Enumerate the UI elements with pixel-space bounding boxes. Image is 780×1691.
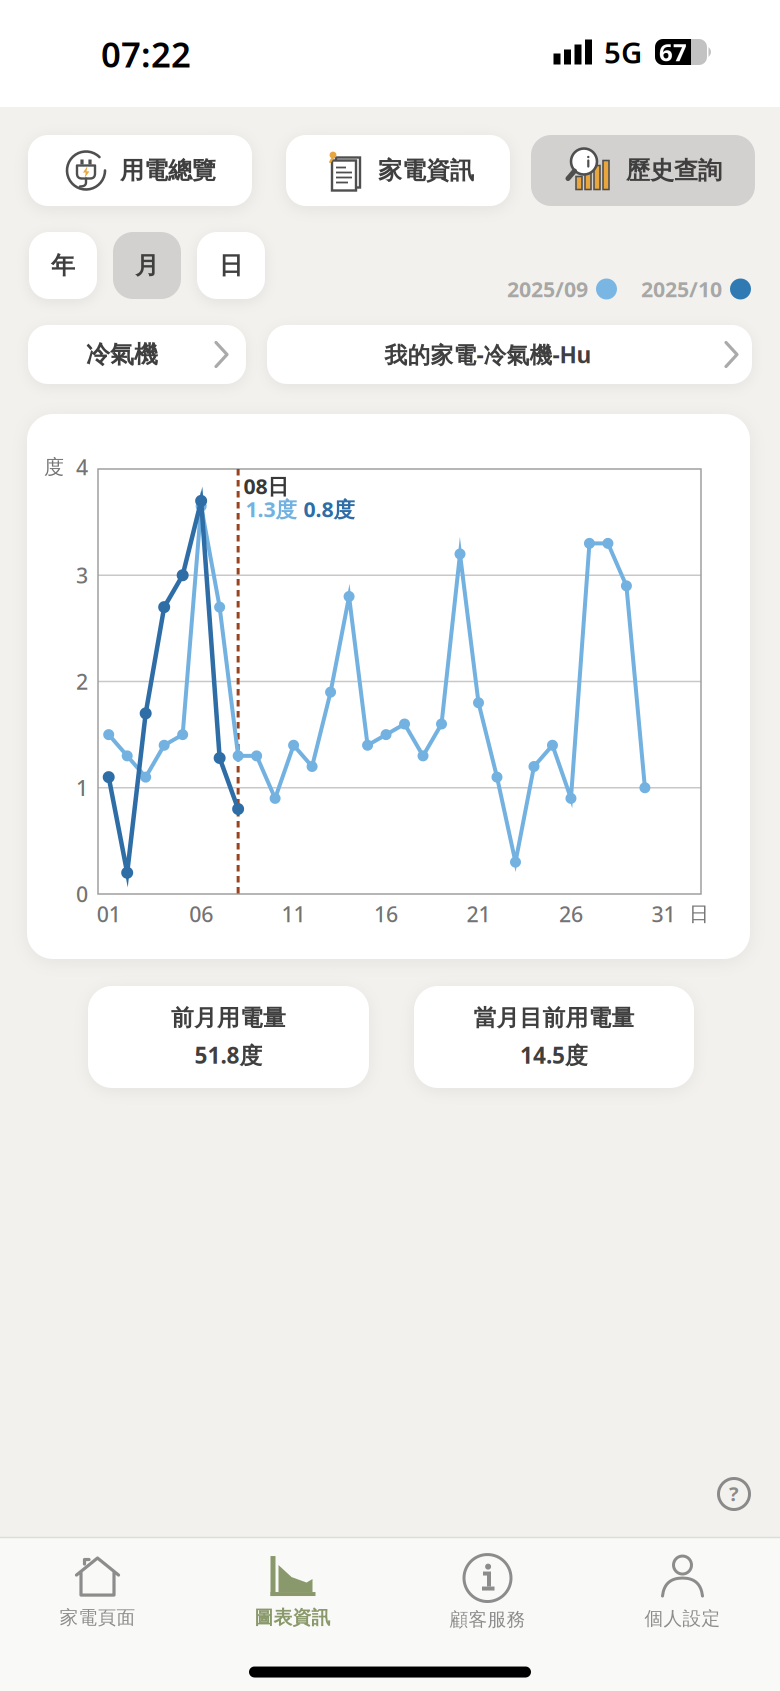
staticText: 1.3度	[245, 495, 296, 523]
staticText: 當月目前用電量	[473, 1004, 634, 1032]
button[interactable]: 我的家電-冷氣機-Hu	[267, 325, 752, 384]
staticText: 個人設定	[644, 1607, 720, 1630]
staticText: 日	[219, 251, 243, 280]
staticText: 16	[374, 900, 398, 928]
staticText: 08日	[243, 472, 288, 500]
staticText: 0	[76, 880, 88, 908]
staticText: 11	[282, 900, 306, 928]
button[interactable]: 年	[29, 232, 97, 299]
staticText: 度	[44, 455, 64, 479]
staticText: 14.5度	[520, 1040, 588, 1070]
staticText: 31	[651, 900, 675, 928]
staticText: 01	[97, 900, 121, 928]
button[interactable]: 顧客服務	[390, 1537, 585, 1647]
staticText: 26	[559, 900, 583, 928]
staticText: 3	[76, 561, 88, 589]
staticText: 0.8度	[303, 495, 354, 523]
button[interactable]: 當月目前用電量	[414, 986, 694, 1088]
staticText: 21	[466, 900, 490, 928]
staticText: 2	[76, 667, 88, 696]
staticText: 2025/09	[507, 275, 588, 303]
button[interactable]: 前月用電量	[88, 986, 369, 1088]
staticText: 冷氣機	[86, 340, 158, 369]
staticText: 1	[76, 774, 88, 802]
staticText: 51.8度	[194, 1040, 262, 1070]
button[interactable]: 冷氣機	[28, 325, 246, 384]
staticText: 06	[189, 900, 213, 928]
staticText: 家電頁面	[59, 1606, 135, 1629]
staticText: 家電資訊	[378, 156, 474, 185]
staticText: 前月用電量	[171, 1004, 286, 1032]
staticText: 歷史查詢	[626, 156, 722, 185]
staticText: 4	[76, 453, 88, 481]
staticText: 圖表資訊	[254, 1606, 330, 1629]
button[interactable]: 用電總覽	[28, 135, 252, 206]
button[interactable]: 月	[113, 232, 181, 299]
button[interactable]: 歷史查詢	[531, 135, 755, 206]
staticText: 07:22	[101, 31, 191, 77]
button[interactable]: Help	[717, 1477, 751, 1511]
staticText: 5G	[604, 32, 642, 71]
staticText: 顧客服務	[449, 1608, 525, 1631]
button[interactable]: 日	[197, 232, 265, 299]
staticText: 用電總覽	[120, 156, 216, 185]
button[interactable]: 家電資訊	[286, 135, 510, 206]
staticText: 2025/10	[641, 275, 722, 303]
button[interactable]: 家電頁面	[0, 1537, 195, 1647]
staticText: 我的家電-冷氣機-Hu	[384, 339, 591, 369]
staticText: 67	[659, 36, 687, 68]
button[interactable]: 個人設定	[585, 1537, 780, 1647]
staticText: 月	[135, 251, 159, 280]
staticText: 年	[51, 251, 75, 280]
button[interactable]: 圖表資訊	[195, 1537, 390, 1647]
staticText: 日	[689, 902, 709, 926]
staticText: ?	[729, 1480, 739, 1507]
